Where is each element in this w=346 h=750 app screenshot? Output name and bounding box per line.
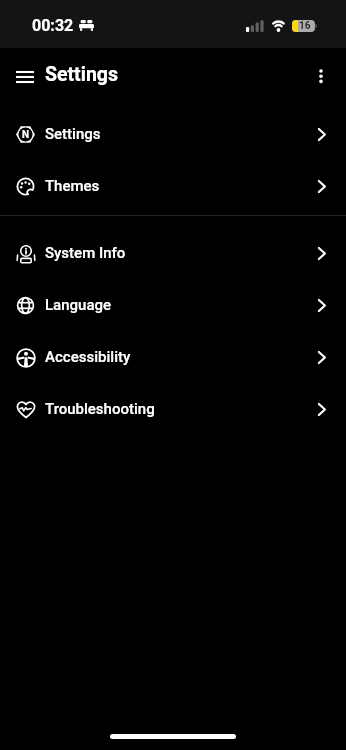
staticText: 16 (299, 20, 311, 32)
staticText: System Info (45, 244, 126, 262)
button[interactable]: Troubleshooting (0, 383, 346, 435)
button[interactable] (10, 59, 40, 89)
button[interactable]: Themes (0, 160, 346, 212)
button[interactable]: N (0, 108, 346, 160)
staticText: Accessibility (45, 348, 131, 366)
button[interactable]: Accessibility (0, 331, 346, 383)
staticText: Settings (45, 63, 118, 86)
staticText: Troubleshooting (45, 400, 155, 418)
staticText: Settings (45, 125, 101, 143)
button[interactable] (305, 58, 337, 90)
button[interactable]: System Info (0, 227, 346, 279)
button[interactable]: Language (0, 279, 346, 331)
staticText: 00:32 (32, 16, 74, 35)
staticText: Themes (45, 177, 100, 195)
staticText: N (22, 129, 30, 141)
staticText: Language (45, 296, 112, 314)
